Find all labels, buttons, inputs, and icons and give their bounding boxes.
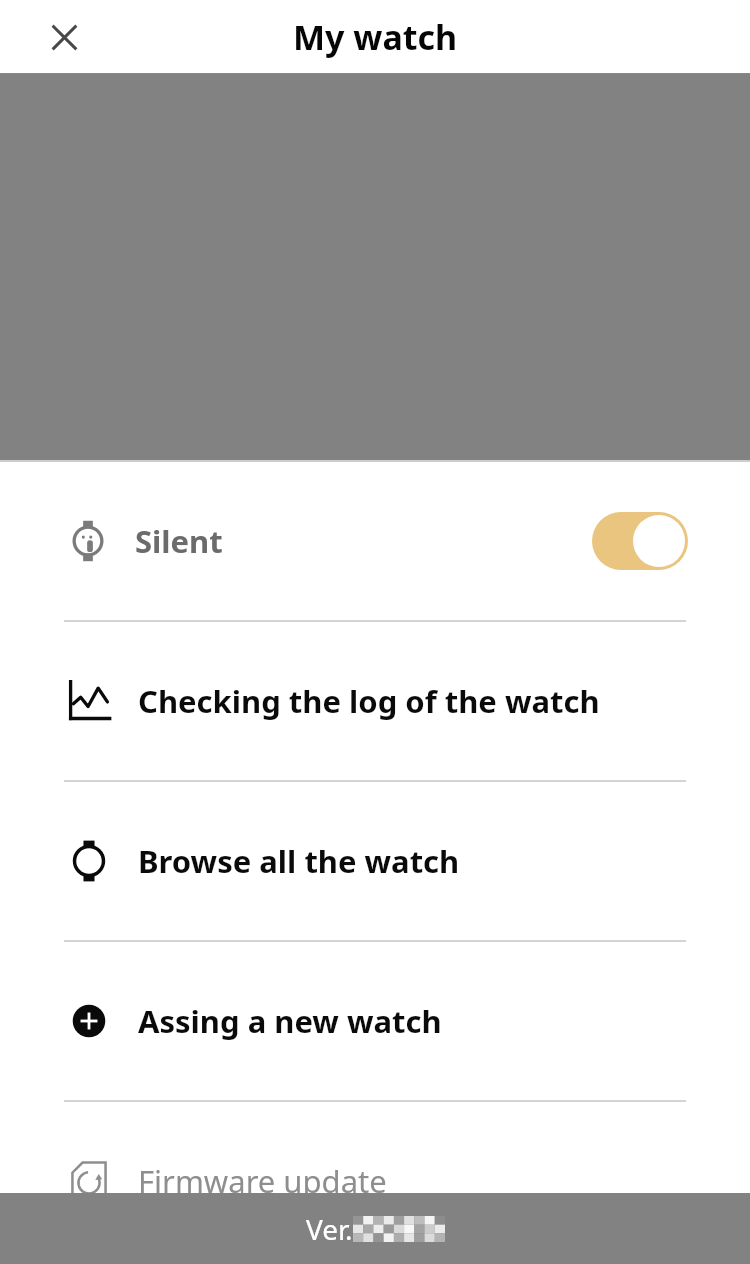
button[interactable]: Close	[34, 7, 94, 67]
button[interactable]: Assing a new watch	[0, 942, 750, 1100]
staticText: My watch	[293, 14, 458, 60]
button[interactable]: Silent toggle, on	[592, 512, 688, 570]
staticText: Browse all the watch	[138, 840, 460, 882]
staticText: Checking the log of the watch	[138, 680, 600, 722]
staticText: Silent	[135, 520, 223, 562]
button[interactable]: Browse all the watch	[0, 782, 750, 940]
button[interactable]: Silent	[0, 462, 750, 620]
staticText: Firmware update	[138, 1160, 387, 1202]
button[interactable]: Firmware update	[0, 1102, 750, 1260]
button[interactable]: Checking the log of the watch	[0, 622, 750, 780]
staticText: Assing a new watch	[138, 1000, 442, 1042]
staticText: Ver.	[306, 1210, 353, 1248]
